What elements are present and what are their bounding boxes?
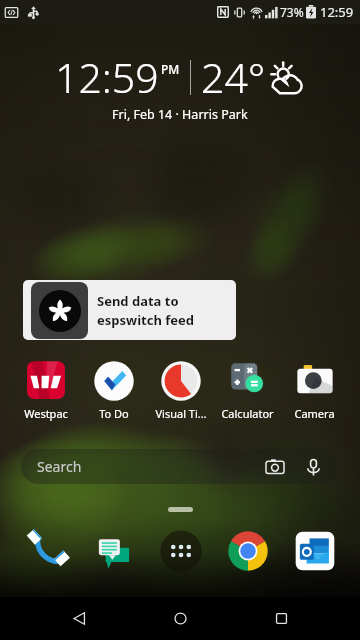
staticText: PM xyxy=(161,61,180,77)
staticText: 24° xyxy=(201,49,266,105)
staticText: 12:59 xyxy=(320,3,354,21)
button[interactable]: Phone xyxy=(12,524,80,578)
staticText: 12:59 xyxy=(55,49,159,105)
button[interactable]: Back xyxy=(57,597,101,640)
staticText: Visual Ti… xyxy=(155,406,207,421)
button[interactable]: Fri, Feb 14 · Harris Park xyxy=(112,106,248,123)
button[interactable]: Home xyxy=(158,597,202,640)
button[interactable]: Search with camera xyxy=(263,455,287,479)
button[interactable]: All apps xyxy=(147,524,214,578)
staticText: Calculator xyxy=(221,406,274,421)
staticText: To Do xyxy=(99,406,129,421)
staticText: Search xyxy=(37,457,82,476)
staticText: 73% xyxy=(280,4,304,20)
staticText: Westpac xyxy=(24,406,68,421)
button[interactable]: Chrome xyxy=(214,524,281,578)
button[interactable]: Messages xyxy=(80,524,147,578)
button[interactable]: To Do xyxy=(80,360,147,421)
button[interactable]: Search xyxy=(21,449,339,484)
staticText: Camera xyxy=(294,406,335,421)
button[interactable]: Visual Ti… xyxy=(147,360,214,421)
button[interactable]: Calculator xyxy=(214,360,281,421)
staticText: espswitch feed xyxy=(97,311,194,329)
button[interactable]: 12:59 xyxy=(55,49,305,105)
button[interactable]: Outlook xyxy=(281,524,348,578)
button[interactable]: Westpac xyxy=(12,360,80,421)
button[interactable]: Recent apps xyxy=(259,597,303,640)
button[interactable]: Camera xyxy=(281,360,348,421)
button[interactable]: Send data to xyxy=(23,280,236,340)
staticText: Send data to xyxy=(97,292,179,310)
button[interactable]: Search by voice xyxy=(301,455,325,479)
